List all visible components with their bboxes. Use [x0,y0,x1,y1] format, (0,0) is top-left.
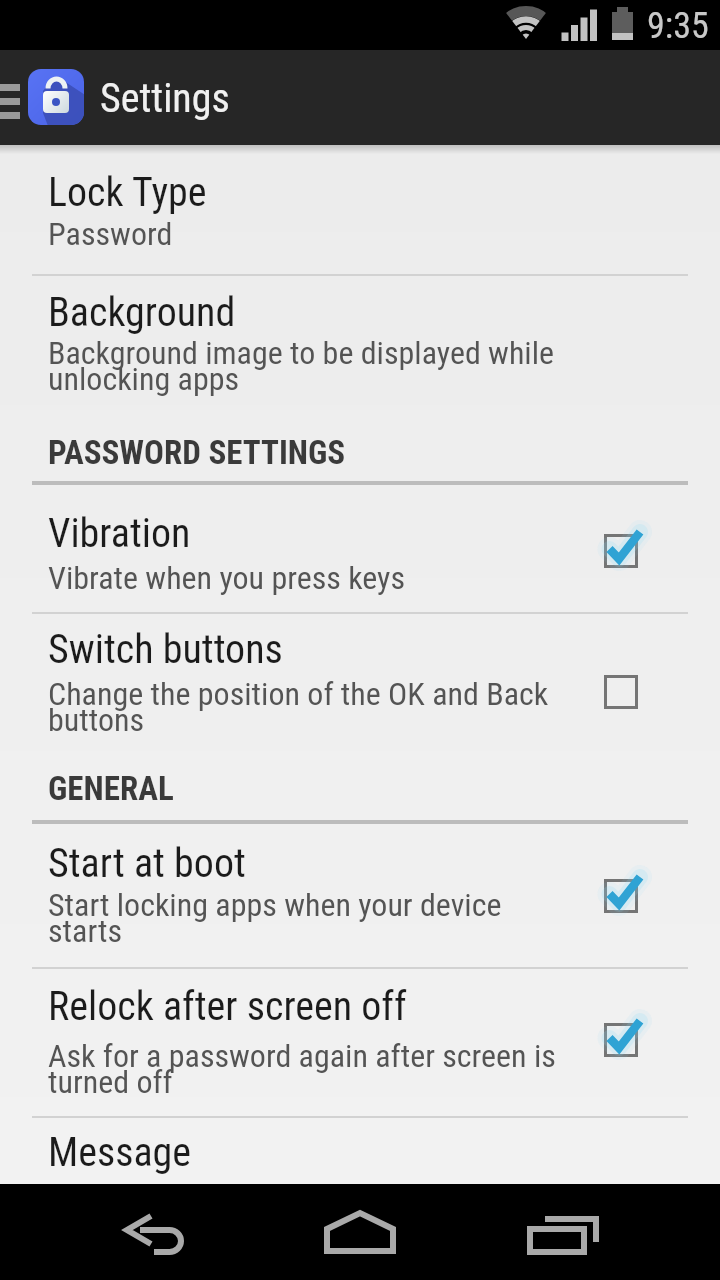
button[interactable] [604,879,654,929]
button[interactable] [100,1184,250,1280]
button[interactable]: Start at boot [0,824,720,967]
button[interactable] [604,1023,654,1073]
button[interactable]: Lock Type [0,146,720,274]
staticText: Start locking apps when your device [48,886,502,924]
staticText: turned off [48,1063,173,1101]
staticText: Settings [100,75,230,122]
button[interactable]: Switch buttons [0,614,720,755]
button[interactable] [500,1184,650,1280]
button[interactable] [300,1184,450,1280]
staticText: Start at boot [48,840,246,887]
staticText: GENERAL [48,769,174,808]
staticText: Background [48,289,236,336]
button[interactable] [604,534,654,584]
button[interactable]: Background [0,276,720,420]
staticText: Change the position of the OK and Back [48,675,549,713]
staticText: 9:35 [647,5,709,47]
staticText: buttons [48,701,145,739]
staticText: Lock Type [48,169,207,216]
staticText: PASSWORD SETTINGS [48,433,346,472]
staticText: Message [48,1129,192,1176]
staticText: starts [48,912,122,950]
button[interactable]: Message [0,1118,720,1184]
staticText: Ask for a password again after screen is [48,1037,556,1075]
staticText: Password [48,215,173,253]
button[interactable]: Vibration [0,485,720,612]
button[interactable] [604,675,654,725]
button[interactable]: Relock after screen off [0,969,720,1116]
staticText: unlocking apps [48,360,240,398]
staticText: Vibrate when you press keys [48,559,405,597]
staticText: Relock after screen off [48,983,407,1030]
staticText: Switch buttons [48,626,283,673]
staticText: Vibration [48,510,191,557]
staticText: Background image to be displayed while [48,334,555,372]
